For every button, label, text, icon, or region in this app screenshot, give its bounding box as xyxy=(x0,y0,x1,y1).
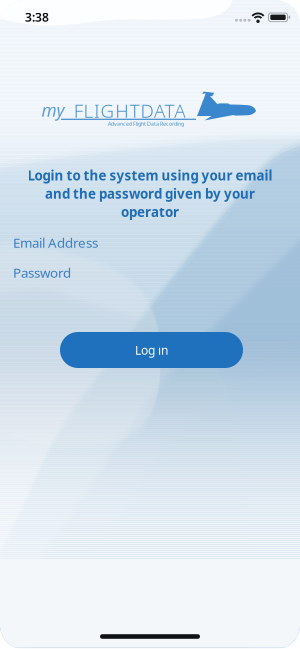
staticText: 3:38 xyxy=(25,9,49,25)
button[interactable]: Log in xyxy=(60,332,243,368)
staticText: my xyxy=(41,98,64,121)
staticText: Password xyxy=(13,264,71,281)
staticText: Login to the system using your email xyxy=(27,166,272,184)
staticText: Log in xyxy=(135,342,168,358)
staticText: and the password given by your xyxy=(45,185,255,202)
staticText: Email Address xyxy=(13,234,98,251)
button[interactable]: Password xyxy=(0,259,300,285)
staticText: FLIGHTDATA xyxy=(74,98,185,123)
staticText: Advanced Flight Data Recording xyxy=(108,120,184,127)
staticText: operator xyxy=(121,203,179,221)
button[interactable]: Email Address xyxy=(0,229,300,255)
